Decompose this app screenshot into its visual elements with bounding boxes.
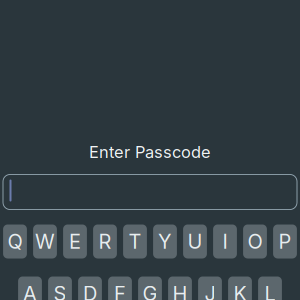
- staticText: E: [69, 229, 81, 254]
- button[interactable]: I: [213, 224, 237, 258]
- staticText: Y: [158, 229, 172, 254]
- button[interactable]: S: [48, 276, 72, 300]
- button[interactable]: G: [138, 276, 162, 300]
- button[interactable]: D: [78, 276, 102, 300]
- staticText: P: [278, 229, 291, 254]
- staticText: O: [247, 229, 262, 254]
- button[interactable]: Y: [153, 224, 177, 258]
- staticText: D: [83, 281, 97, 300]
- button[interactable]: K: [228, 276, 252, 300]
- staticText: Enter Passcode: [89, 142, 211, 162]
- staticText: G: [142, 281, 157, 300]
- staticText: F: [114, 281, 126, 300]
- button[interactable]: Passcode: [3, 174, 297, 209]
- staticText: J: [204, 281, 215, 300]
- button[interactable]: U: [183, 224, 207, 258]
- staticText: L: [264, 281, 275, 300]
- button[interactable]: P: [273, 224, 297, 258]
- button[interactable]: R: [93, 224, 117, 258]
- staticText: S: [53, 281, 66, 300]
- staticText: I: [222, 229, 227, 254]
- button[interactable]: Q: [3, 224, 27, 258]
- button[interactable]: F: [108, 276, 132, 300]
- button[interactable]: W: [33, 224, 57, 258]
- button[interactable]: O: [243, 224, 267, 258]
- button[interactable]: H: [168, 276, 192, 300]
- button[interactable]: J: [198, 276, 222, 300]
- staticText: A: [23, 281, 37, 300]
- staticText: U: [187, 229, 202, 254]
- button[interactable]: L: [258, 276, 282, 300]
- button[interactable]: A: [18, 276, 42, 300]
- staticText: K: [233, 281, 246, 300]
- staticText: Q: [7, 229, 22, 254]
- staticText: W: [35, 229, 55, 254]
- button[interactable]: T: [123, 224, 147, 258]
- staticText: H: [172, 281, 187, 300]
- staticText: T: [128, 229, 141, 254]
- button[interactable]: E: [63, 224, 87, 258]
- staticText: R: [98, 229, 111, 254]
